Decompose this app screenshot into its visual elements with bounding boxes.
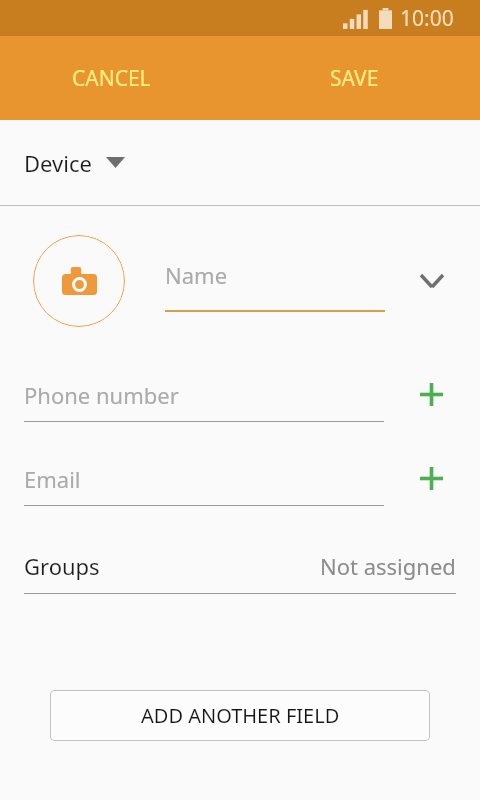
button[interactable]: Groups [0, 546, 480, 594]
staticText: Device [24, 148, 92, 178]
staticText: Phone number [24, 380, 179, 410]
staticText: CANCEL [72, 64, 151, 93]
button[interactable]: Add Email [408, 455, 454, 501]
staticText: Email [24, 464, 81, 494]
button[interactable]: Name [165, 250, 385, 312]
staticText: Name [165, 260, 228, 290]
button[interactable]: Add photo [33, 235, 125, 327]
staticText: SAVE [330, 64, 379, 93]
button[interactable]: Add Phone number [408, 371, 454, 417]
button[interactable]: Expand name details [409, 258, 455, 304]
button[interactable]: Device [0, 120, 480, 205]
button[interactable]: Email [24, 460, 384, 506]
button[interactable]: Phone number [24, 376, 384, 422]
staticText: Not assigned [320, 551, 456, 581]
button[interactable]: SAVE [306, 50, 403, 107]
staticText: ADD ANOTHER FIELD [141, 702, 340, 729]
button[interactable]: ADD ANOTHER FIELD [50, 690, 430, 741]
staticText: Groups [24, 551, 100, 581]
button[interactable]: CANCEL [48, 50, 175, 107]
staticText: 10:00 [400, 4, 454, 33]
